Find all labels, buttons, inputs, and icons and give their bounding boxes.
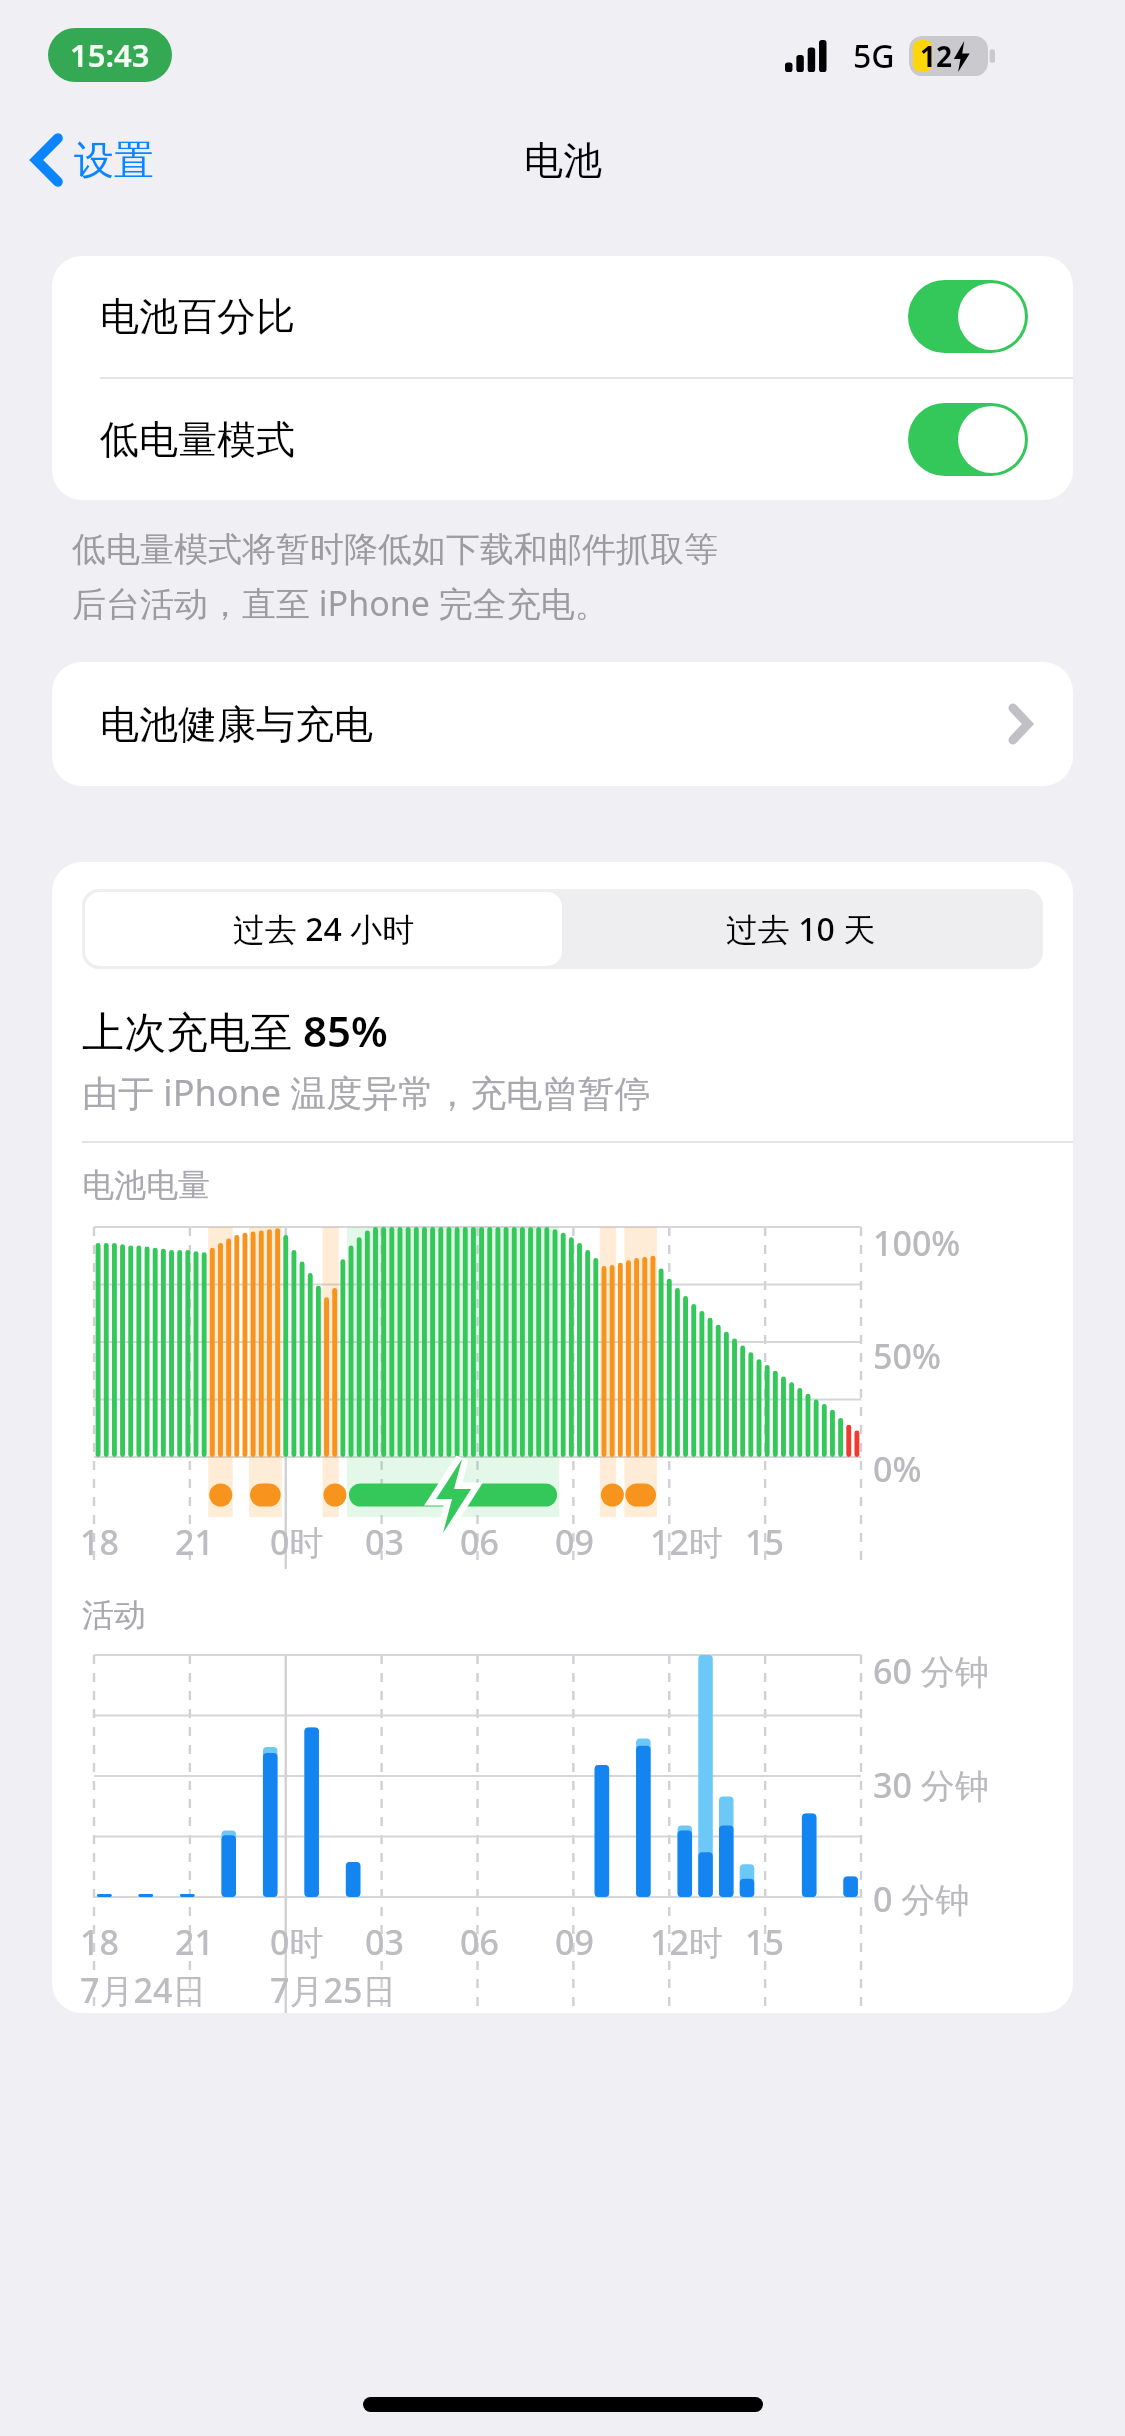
staticText: 由于 iPhone 温度异常，充电曾暂停 <box>82 1068 651 1117</box>
staticText: 12时 <box>650 1519 723 1565</box>
staticText: 上次充电至 85% <box>82 1002 388 1059</box>
staticText: 0时 <box>270 1519 324 1565</box>
staticText: 30 分钟 <box>873 1762 989 1808</box>
staticText: 0 分钟 <box>873 1876 970 1922</box>
staticText: 60 分钟 <box>873 1648 989 1694</box>
other: 电池百分比 <box>908 280 1028 353</box>
staticText: 09 <box>555 1519 594 1565</box>
staticText: 03 <box>365 1519 404 1565</box>
staticText: 设置 <box>74 135 154 185</box>
staticText: 过去 24 小时 <box>233 907 415 951</box>
staticText: 21 <box>175 1919 214 1965</box>
staticText: 后台活动，直至 iPhone 完全充电。 <box>72 580 609 626</box>
button[interactable]: 低电量模式 <box>52 379 1073 500</box>
other: 低电量模式 <box>908 403 1028 476</box>
staticText: 0% <box>873 1446 922 1492</box>
staticText: 低电量模式将暂时降低如下载和邮件抓取等 <box>72 528 718 571</box>
button[interactable]: 过去 24 小时 <box>85 892 562 966</box>
staticText: 21 <box>175 1519 214 1565</box>
staticText: 50% <box>873 1333 941 1379</box>
staticText: 电池 <box>524 136 602 185</box>
button[interactable]: 电池百分比 <box>52 256 1073 377</box>
button[interactable]: 过去 10 天 <box>562 892 1040 966</box>
staticText: 7月24日 <box>80 1967 207 2013</box>
staticText: 活动 <box>82 1595 146 1635</box>
staticText: 电池百分比 <box>100 292 295 341</box>
staticText: 12时 <box>650 1919 723 1965</box>
staticText: 低电量模式 <box>100 415 295 464</box>
staticText: 18 <box>80 1519 119 1565</box>
staticText: 12 <box>920 37 953 75</box>
staticText: 06 <box>460 1519 499 1565</box>
staticText: 100% <box>873 1220 961 1266</box>
staticText: 06 <box>460 1919 499 1965</box>
staticText: 15 <box>745 1519 784 1565</box>
staticText: 15 <box>745 1919 784 1965</box>
staticText: 电池健康与充电 <box>100 700 373 749</box>
button[interactable]: 设置 <box>24 126 162 194</box>
staticText: 电池电量 <box>82 1165 210 1205</box>
staticText: 过去 10 天 <box>726 907 876 951</box>
staticText: 09 <box>555 1919 594 1965</box>
staticText: 03 <box>365 1919 404 1965</box>
staticText: 18 <box>80 1919 119 1965</box>
staticText: 15:43 <box>70 34 150 76</box>
staticText: 0时 <box>270 1919 324 1965</box>
button[interactable]: 电池健康与充电 <box>52 662 1073 786</box>
staticText: 7月25日 <box>270 1967 397 2013</box>
staticText: 5G <box>853 34 895 78</box>
